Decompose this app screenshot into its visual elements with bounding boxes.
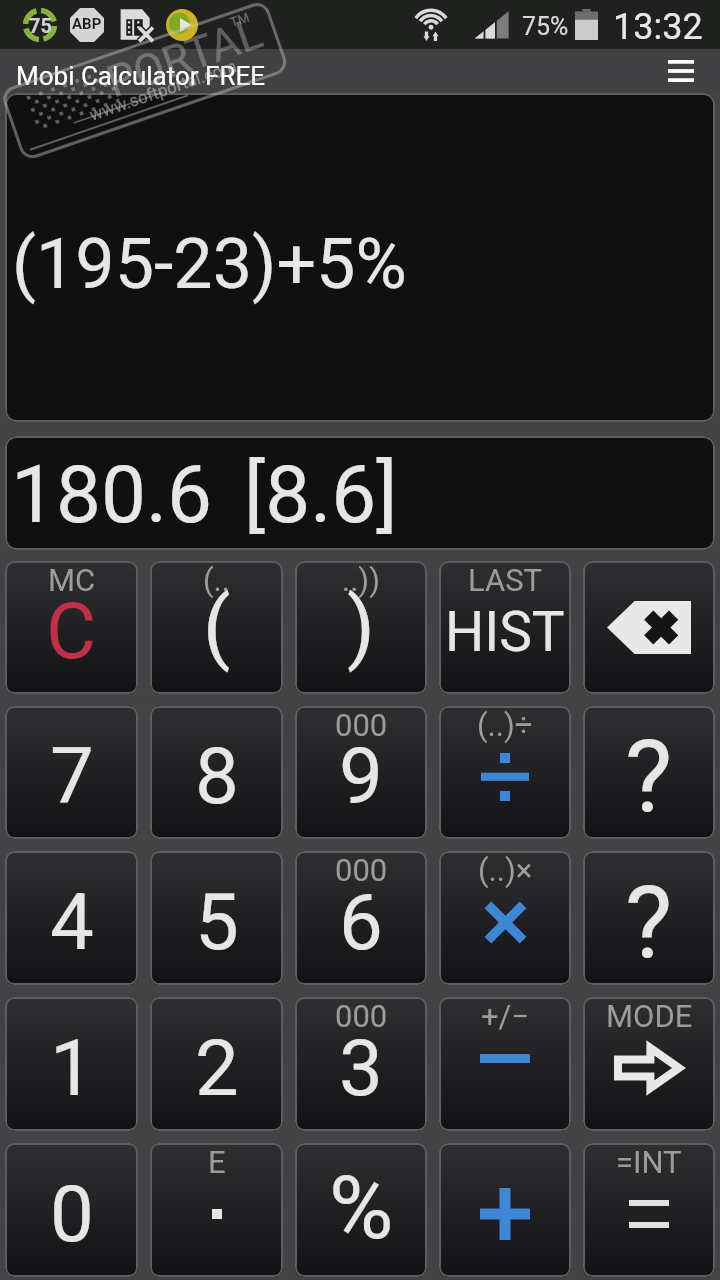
button[interactable]: 7: [5, 706, 138, 839]
button[interactable]: Equals: [583, 1143, 715, 1277]
staticText: 6: [339, 877, 383, 968]
button[interactable]: Divide: [439, 706, 571, 839]
staticText: 9: [339, 731, 383, 822]
staticText: 180.6: [11, 448, 212, 542]
button[interactable]: History: [439, 561, 571, 694]
button[interactable]: 1: [5, 997, 138, 1131]
staticText: 0: [50, 1169, 94, 1260]
button[interactable]: 0: [5, 1143, 138, 1277]
button[interactable]: Multiply: [439, 851, 571, 985]
staticText: Mobi Calculator FREE: [16, 61, 265, 91]
button[interactable]: 8: [150, 706, 283, 839]
staticText: MODE: [606, 998, 693, 1034]
button[interactable]: Open parenthesis: [150, 561, 283, 694]
staticText: (195-23)+5%: [12, 223, 407, 305]
staticText: %: [329, 1156, 394, 1259]
staticText: 3: [339, 1023, 383, 1114]
button[interactable]: Clear: [5, 561, 138, 694]
staticText: ): [347, 580, 375, 674]
staticText: =INT: [616, 1144, 682, 1180]
staticText: 000: [335, 707, 388, 743]
staticText: (: [203, 580, 231, 674]
staticText: (..)÷: [477, 707, 533, 743]
button[interactable]: Custom key 1: [583, 706, 715, 839]
staticText: HIST: [445, 600, 565, 664]
staticText: (..)×: [478, 852, 533, 888]
staticText: MC: [48, 562, 96, 598]
button[interactable]: Expression: [5, 93, 715, 422]
button[interactable]: 3: [295, 997, 427, 1131]
staticText: 5: [195, 877, 239, 968]
button[interactable]: Close parenthesis: [295, 561, 427, 694]
button[interactable]: 4: [5, 851, 138, 985]
button[interactable]: 5: [150, 851, 283, 985]
button[interactable]: Result: [5, 436, 715, 550]
staticText: ABP: [72, 15, 102, 33]
staticText: +/−: [481, 998, 530, 1034]
button[interactable]: 6: [295, 851, 427, 985]
staticText: ?: [625, 718, 673, 835]
button[interactable]: 9: [295, 706, 427, 839]
staticText: LAST: [468, 562, 543, 598]
staticText: 75: [29, 14, 52, 37]
staticText: 7: [50, 731, 94, 822]
staticText: 000: [335, 998, 388, 1034]
staticText: 2: [195, 1023, 239, 1114]
staticText: [8.6]: [244, 448, 398, 542]
button[interactable]: Mode: [583, 997, 715, 1131]
staticText: 75%: [522, 12, 569, 41]
staticText: 000: [335, 852, 388, 888]
staticText: (..: [203, 562, 230, 598]
button[interactable]: Menu: [660, 50, 702, 92]
button[interactable]: Minus: [439, 997, 571, 1131]
staticText: E: [208, 1144, 226, 1180]
button[interactable]: Custom key 2: [583, 851, 715, 985]
button[interactable]: Percent: [295, 1143, 427, 1277]
staticText: C: [46, 587, 97, 677]
staticText: ..)): [342, 562, 380, 598]
staticText: 8: [195, 731, 239, 822]
staticText: 4: [50, 877, 94, 968]
button[interactable]: 2: [150, 997, 283, 1131]
button[interactable]: Backspace: [583, 561, 715, 694]
staticText: 1: [50, 1023, 94, 1114]
staticText: 13:32: [613, 6, 703, 48]
button[interactable]: Decimal point: [150, 1143, 283, 1277]
staticText: ?: [625, 864, 673, 981]
button[interactable]: Plus: [439, 1143, 571, 1277]
